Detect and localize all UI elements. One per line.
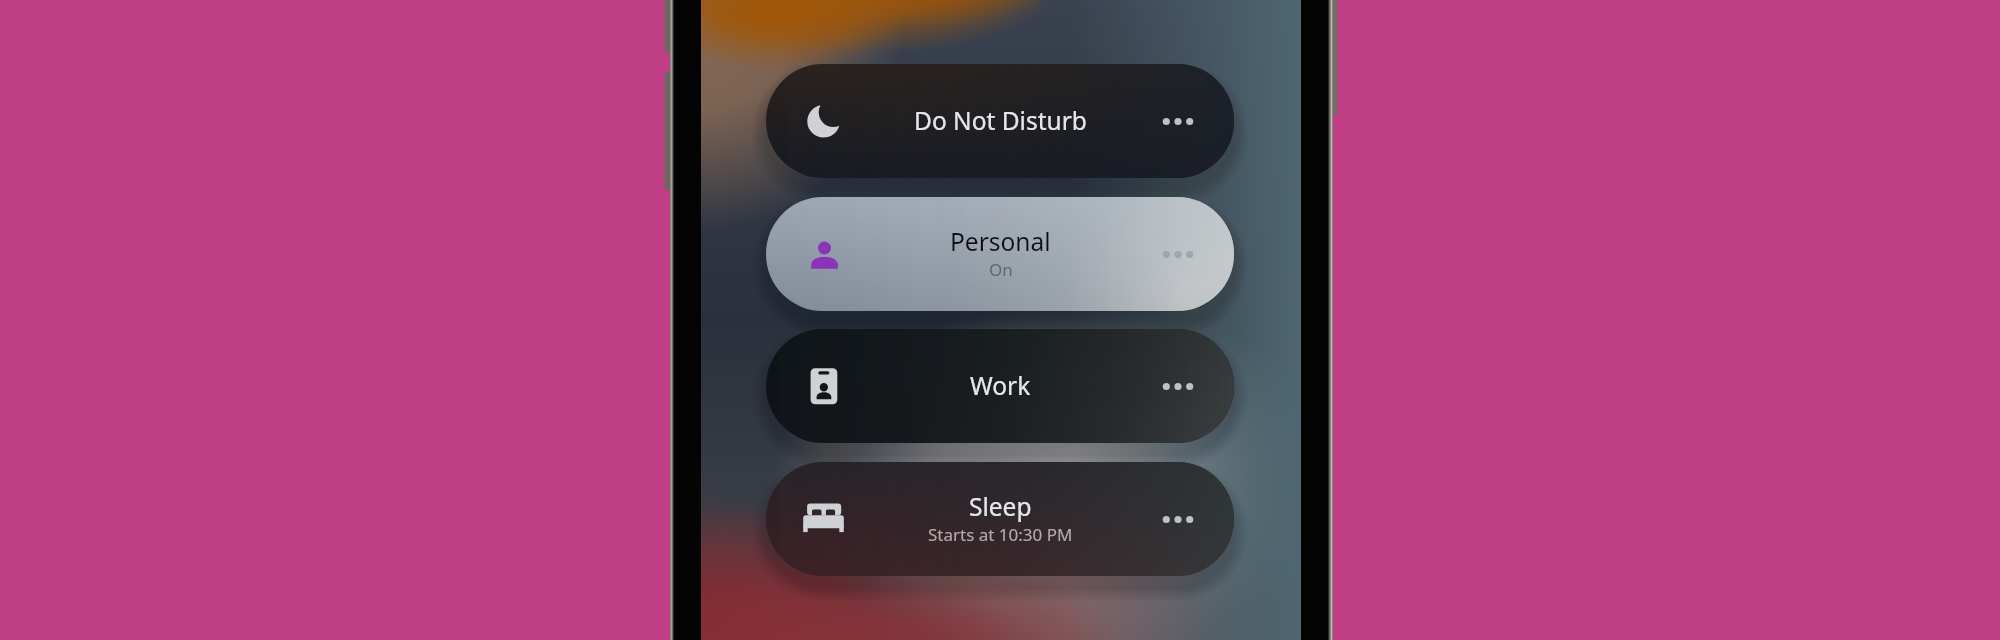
staticText: Sleep xyxy=(969,490,1032,523)
staticText: Work xyxy=(970,369,1031,402)
staticText: Starts at 10:30 PM xyxy=(928,523,1073,546)
button[interactable]: More options for Personal xyxy=(1152,227,1204,279)
button[interactable]: Personal xyxy=(766,197,1234,311)
staticText: Personal xyxy=(950,225,1051,258)
button[interactable]: More options for Do Not Disturb xyxy=(1152,94,1204,146)
button[interactable]: More options for Work xyxy=(1152,359,1204,411)
button[interactable]: Sleep xyxy=(766,462,1234,576)
staticText: Do Not Disturb xyxy=(914,104,1087,137)
staticText: On xyxy=(989,258,1013,281)
button[interactable]: Work xyxy=(766,329,1234,443)
button[interactable]: More options for Sleep xyxy=(1152,492,1204,544)
button[interactable]: Do Not Disturb xyxy=(766,64,1234,178)
